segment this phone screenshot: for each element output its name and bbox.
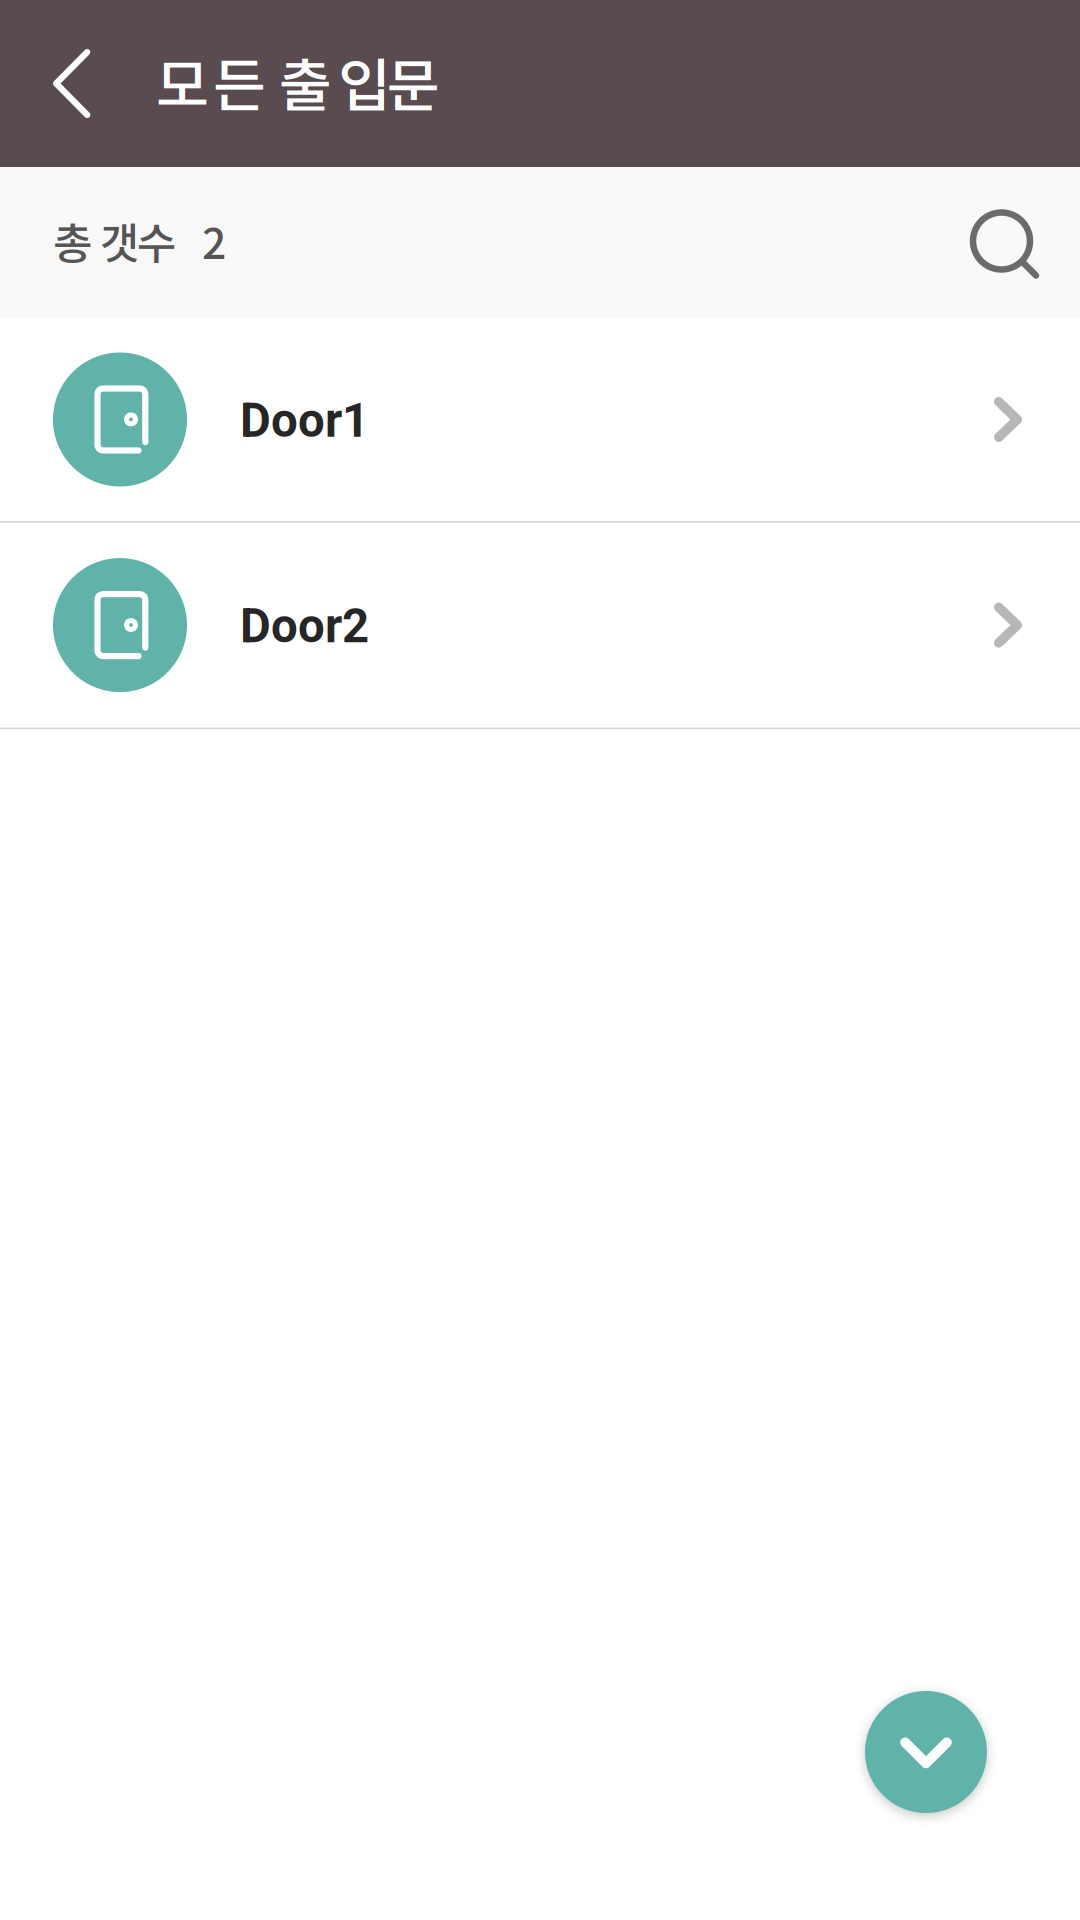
staticText: 문 bbox=[387, 40, 440, 123]
staticText: 2 bbox=[202, 210, 226, 271]
button[interactable]: Collapse bbox=[865, 1691, 987, 1813]
group: 모든 출입문 bbox=[156, 40, 440, 123]
staticText: 갯수 bbox=[100, 210, 176, 271]
staticText: 출입 bbox=[279, 40, 391, 123]
staticText: 총 bbox=[53, 210, 92, 271]
staticText: 모든 bbox=[156, 40, 266, 123]
button[interactable]: Door1 bbox=[0, 318, 1080, 521]
group: 총 갯수 2 bbox=[53, 210, 226, 271]
staticText: Door1 bbox=[240, 393, 369, 448]
button[interactable]: Door2 bbox=[0, 524, 1080, 727]
button[interactable]: Back bbox=[0, 0, 122, 167]
button[interactable]: Search bbox=[926, 167, 1080, 318]
staticText: Door2 bbox=[240, 598, 369, 654]
